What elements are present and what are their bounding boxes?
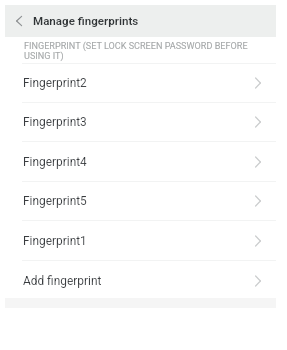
button[interactable]: Fingerprint4 xyxy=(5,142,276,181)
staticText: Fingerprint4 xyxy=(23,155,87,169)
staticText: Manage fingerprints xyxy=(33,14,139,28)
staticText: Fingerprint1 xyxy=(23,234,87,248)
button[interactable]: Add fingerprint xyxy=(5,261,276,298)
staticText: Add fingerprint xyxy=(23,274,102,288)
button[interactable]: Fingerprint3 xyxy=(5,103,276,141)
staticText: Fingerprint5 xyxy=(23,194,87,208)
button[interactable]: Back xyxy=(5,5,33,37)
button[interactable]: Fingerprint5 xyxy=(5,182,276,220)
button[interactable]: Fingerprint2 xyxy=(5,64,276,102)
staticText: Fingerprint2 xyxy=(23,76,87,90)
staticText: FINGERPRINT (SET LOCK SCREEN PASSWORD BE… xyxy=(24,41,248,61)
staticText: Fingerprint3 xyxy=(23,115,87,129)
button[interactable]: Fingerprint1 xyxy=(5,221,276,260)
